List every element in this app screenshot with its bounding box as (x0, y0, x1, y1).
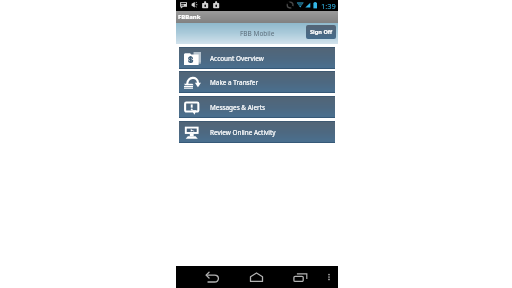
staticText: FBB Mobile (240, 29, 275, 38)
staticText: Messages & Alerts (210, 103, 266, 112)
staticText: FBBank (178, 13, 201, 21)
button[interactable]: Messages & Alerts (179, 96, 335, 118)
button[interactable]: Home (248, 269, 264, 285)
button[interactable]: More options (323, 271, 335, 283)
button[interactable]: Recent apps (292, 269, 308, 285)
staticText: Account Overview (210, 54, 264, 63)
staticText: 1:39 (321, 1, 336, 11)
button[interactable]: Account Overview (179, 47, 335, 69)
button[interactable]: Sign Off (306, 25, 336, 39)
staticText: Review Online Activity (210, 128, 276, 137)
button[interactable]: Back (204, 269, 220, 285)
button[interactable]: Make a Transfer (179, 71, 335, 93)
button[interactable]: Review Online Activity (179, 121, 335, 143)
staticText: Make a Transfer (210, 78, 259, 87)
staticText: Sign Off (310, 28, 333, 36)
